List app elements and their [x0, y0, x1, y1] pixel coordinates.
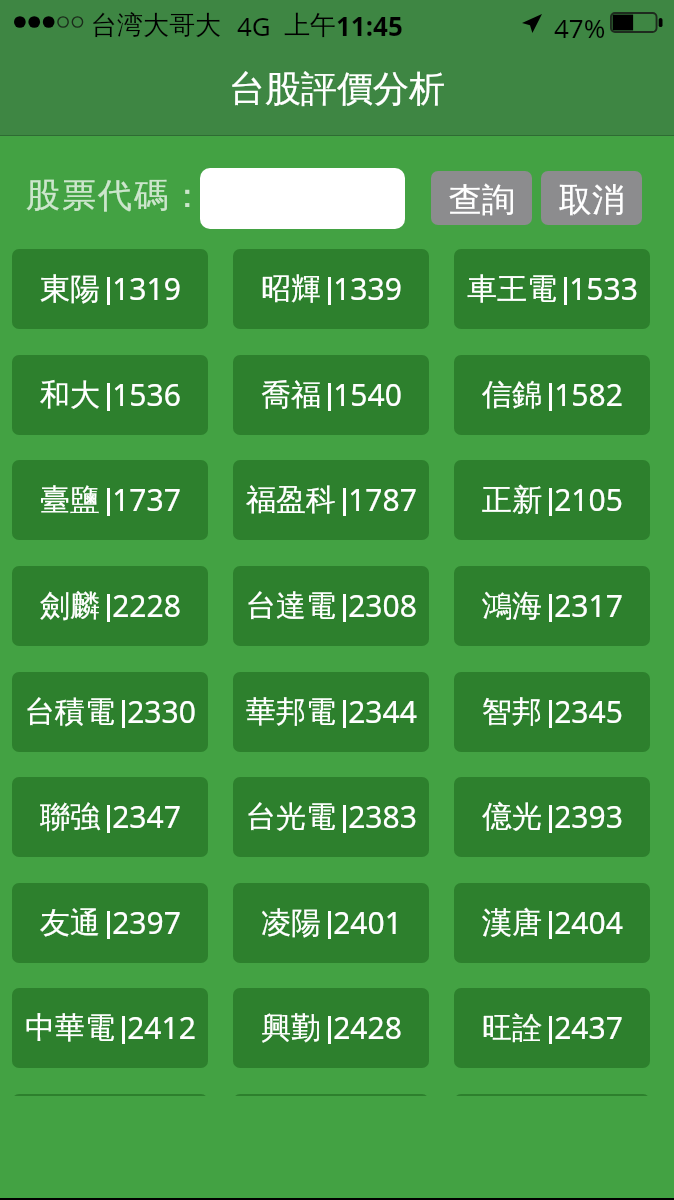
- staticText: 2345: [554, 691, 623, 732]
- staticText: 2344: [348, 691, 417, 732]
- button[interactable]: 凌陽: [233, 883, 429, 963]
- button[interactable]: 福盈科: [233, 460, 429, 540]
- staticText: 凌陽: [261, 904, 321, 942]
- staticText: 1582: [554, 374, 623, 415]
- button[interactable]: 聯強: [12, 777, 208, 857]
- button[interactable]: 取消: [541, 171, 642, 225]
- staticText: 台達電: [246, 587, 336, 625]
- button[interactable]: 友通: [12, 883, 208, 963]
- staticText: 昭輝: [261, 270, 321, 308]
- staticText: 1540: [333, 374, 402, 415]
- staticText: 2401: [333, 902, 402, 943]
- button[interactable]: 智邦: [454, 672, 650, 752]
- staticText: 股票代碼：: [26, 174, 207, 217]
- staticText: 2228: [112, 585, 181, 626]
- staticText: 取消: [559, 179, 625, 221]
- other: Location: [522, 14, 542, 33]
- button[interactable]: 台光電: [233, 777, 429, 857]
- button[interactable]: 信錦: [454, 355, 650, 435]
- button[interactable]: 車王電: [454, 249, 650, 329]
- button[interactable]: 興勤: [233, 988, 429, 1068]
- staticText: 億光: [482, 798, 542, 836]
- staticText: 聯強: [40, 798, 100, 836]
- staticText: 台光電: [246, 798, 336, 836]
- staticText: 漢唐: [482, 904, 542, 942]
- button[interactable]: 億光: [454, 777, 650, 857]
- button[interactable]: 中華電: [12, 988, 208, 1068]
- staticText: 福盈科: [246, 481, 336, 519]
- button[interactable]: 臺鹽: [12, 460, 208, 540]
- button[interactable]: 正新: [454, 460, 650, 540]
- staticText: 1787: [348, 479, 417, 520]
- staticText: 2428: [333, 1007, 402, 1048]
- button[interactable]: 漢唐: [454, 883, 650, 963]
- button[interactable]: 劍麟: [12, 566, 208, 646]
- staticText: 信錦: [482, 376, 542, 414]
- button[interactable]: 華邦電: [233, 672, 429, 752]
- staticText: 2317: [554, 585, 623, 626]
- staticText: 上午: [284, 9, 336, 42]
- staticText: 2397: [112, 902, 181, 943]
- staticText: 2437: [554, 1007, 623, 1048]
- button[interactable]: 喬福: [233, 355, 429, 435]
- button[interactable]: 台積電: [12, 672, 208, 752]
- button[interactable]: [12, 1094, 208, 1096]
- staticText: 東陽: [40, 270, 100, 308]
- staticText: 1533: [569, 268, 638, 309]
- button[interactable]: 和大: [12, 355, 208, 435]
- button[interactable]: 查詢: [431, 171, 532, 225]
- other: Signal strength: [14, 16, 84, 28]
- other: Battery 47 percent: [610, 12, 663, 33]
- button[interactable]: 股票代碼輸入框: [200, 168, 405, 229]
- staticText: 鴻海: [482, 587, 542, 625]
- staticText: 興勤: [261, 1009, 321, 1047]
- staticText: 台湾大哥大: [91, 9, 221, 42]
- staticText: 喬福: [261, 376, 321, 414]
- staticText: 旺詮: [482, 1009, 542, 1047]
- staticText: 1536: [112, 374, 181, 415]
- staticText: 2330: [127, 691, 196, 732]
- button[interactable]: 旺詮: [454, 988, 650, 1068]
- button[interactable]: 鴻海: [454, 566, 650, 646]
- staticText: 1319: [112, 268, 181, 309]
- staticText: 2105: [554, 479, 623, 520]
- staticText: 1339: [333, 268, 402, 309]
- staticText: 47%: [554, 10, 606, 45]
- button[interactable]: [233, 1094, 429, 1096]
- staticText: 查詢: [449, 179, 515, 221]
- button[interactable]: 東陽: [12, 249, 208, 329]
- button[interactable]: 昭輝: [233, 249, 429, 329]
- staticText: 和大: [40, 376, 100, 414]
- staticText: 友通: [40, 904, 100, 942]
- staticText: 2393: [554, 796, 623, 837]
- staticText: 1737: [112, 479, 181, 520]
- staticText: 2412: [127, 1007, 196, 1048]
- button[interactable]: [454, 1094, 650, 1096]
- staticText: 車王電: [467, 270, 557, 308]
- staticText: 臺鹽: [40, 481, 100, 519]
- staticText: 2383: [348, 796, 417, 837]
- staticText: 4G: [237, 8, 271, 43]
- staticText: 2308: [348, 585, 417, 626]
- button[interactable]: 台達電: [233, 566, 429, 646]
- staticText: 劍麟: [40, 587, 100, 625]
- staticText: 2404: [554, 902, 623, 943]
- staticText: 2347: [112, 796, 181, 837]
- staticText: 中華電: [25, 1009, 115, 1047]
- staticText: 11:45: [336, 8, 403, 43]
- staticText: 台積電: [25, 693, 115, 731]
- staticText: 智邦: [482, 693, 542, 731]
- staticText: 正新: [482, 481, 542, 519]
- staticText: 台股評價分析: [229, 66, 445, 111]
- staticText: 華邦電: [246, 693, 336, 731]
